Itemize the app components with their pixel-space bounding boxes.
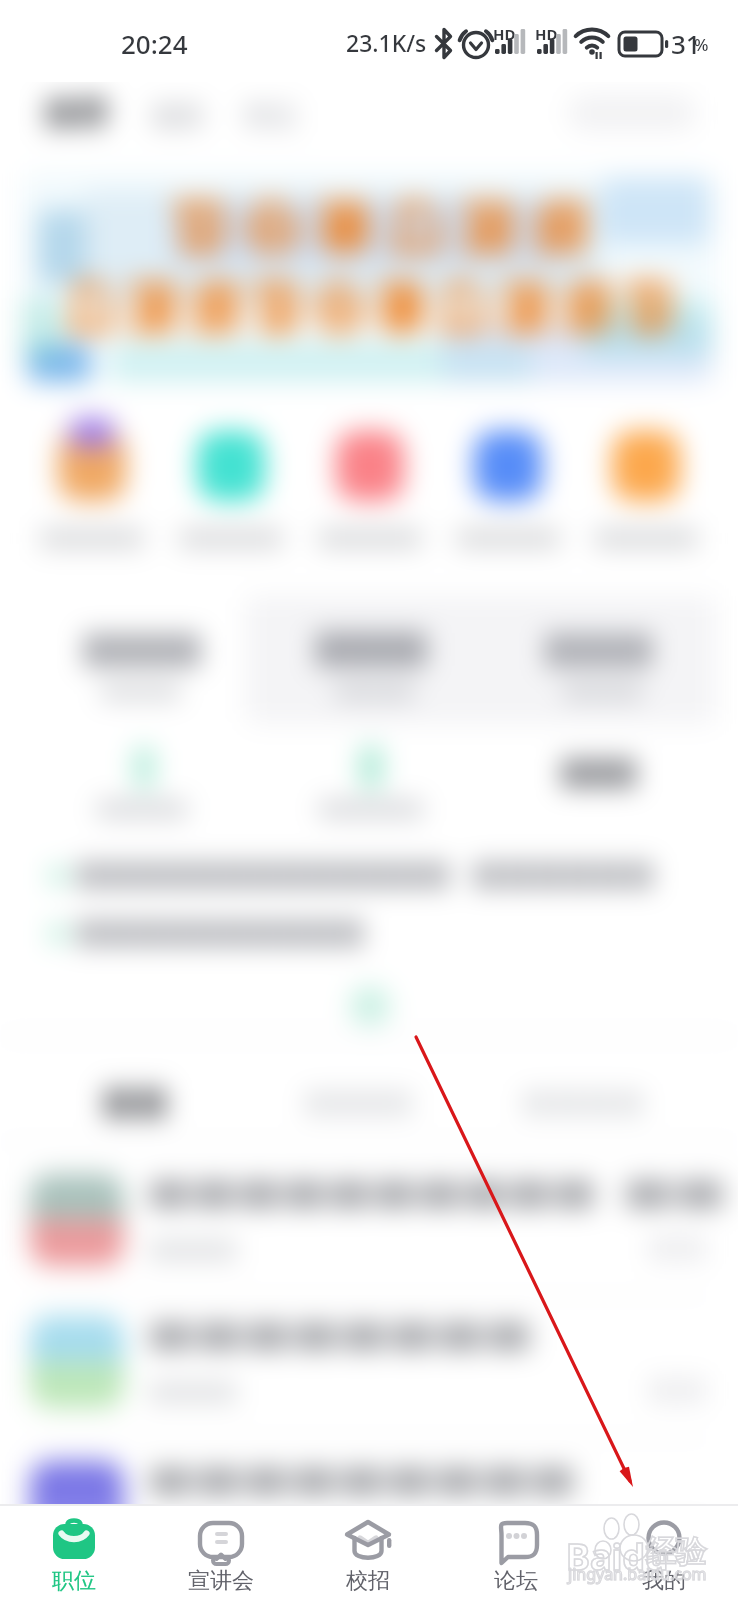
staticText: 论坛 (494, 1567, 538, 1595)
staticText: 职位 (52, 1567, 96, 1595)
staticText: 23.1K/s (346, 27, 427, 58)
button[interactable]: 论坛 (442, 1506, 590, 1595)
button[interactable]: 附近 (246, 100, 298, 133)
staticText: HD (493, 24, 516, 44)
button[interactable]: 推荐 (44, 94, 108, 134)
staticText: % (694, 33, 709, 56)
staticText: 经验 (646, 1533, 706, 1571)
staticText: HD (535, 24, 558, 44)
button[interactable]: 职位 (0, 1506, 147, 1595)
button[interactable] (22, 172, 716, 382)
staticText: 我的 (642, 1567, 686, 1595)
staticText: Baidu (566, 1532, 669, 1581)
button[interactable]: 宣讲会 (147, 1506, 294, 1595)
button[interactable]: 最新 (152, 100, 204, 133)
staticText: Baidu (566, 1532, 669, 1581)
staticText: 校招 (346, 1567, 390, 1595)
staticText: jingyan.baidu.com (568, 1563, 707, 1585)
staticText: 宣讲会 (188, 1567, 254, 1595)
button[interactable]: 校招 (294, 1506, 442, 1595)
staticText: 31 (671, 26, 701, 61)
button[interactable]: 我的 (590, 1506, 738, 1595)
staticText: 20:24 (121, 26, 188, 61)
